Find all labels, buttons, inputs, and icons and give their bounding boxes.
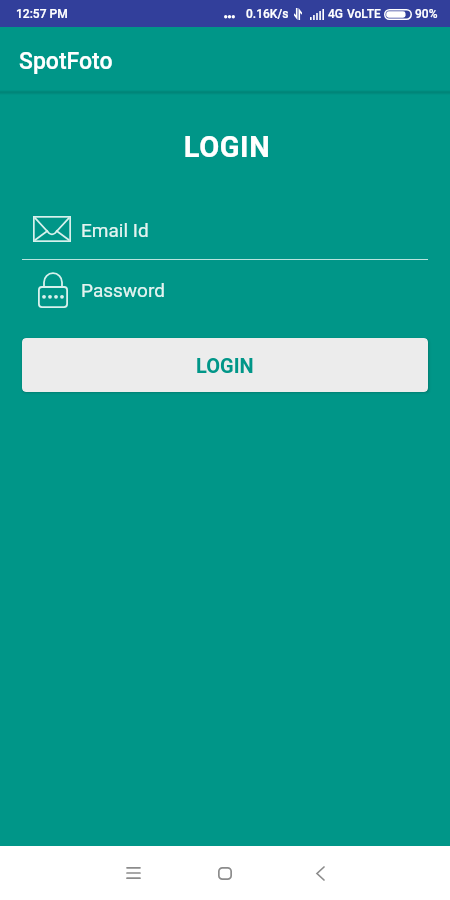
button[interactable]: LOGIN (22, 338, 428, 392)
staticText: SpotFoto (19, 48, 113, 75)
staticText: 4G (328, 7, 343, 21)
staticText: LOGIN (2, 130, 450, 164)
staticText: Email Id (81, 219, 149, 241)
button[interactable]: Back (296, 846, 344, 900)
staticText: Password (81, 279, 165, 301)
staticText: LOGIN (196, 354, 254, 377)
staticText: VoLTE (347, 7, 381, 21)
button[interactable]: Email Id (22, 206, 428, 260)
button[interactable]: Recent apps (109, 846, 157, 900)
staticText: 90% (415, 7, 438, 21)
button[interactable]: Home (201, 846, 249, 900)
button[interactable]: Password (22, 266, 428, 320)
staticText: 12:57 PM (16, 7, 68, 21)
staticText: 0.16K/s (246, 7, 289, 21)
